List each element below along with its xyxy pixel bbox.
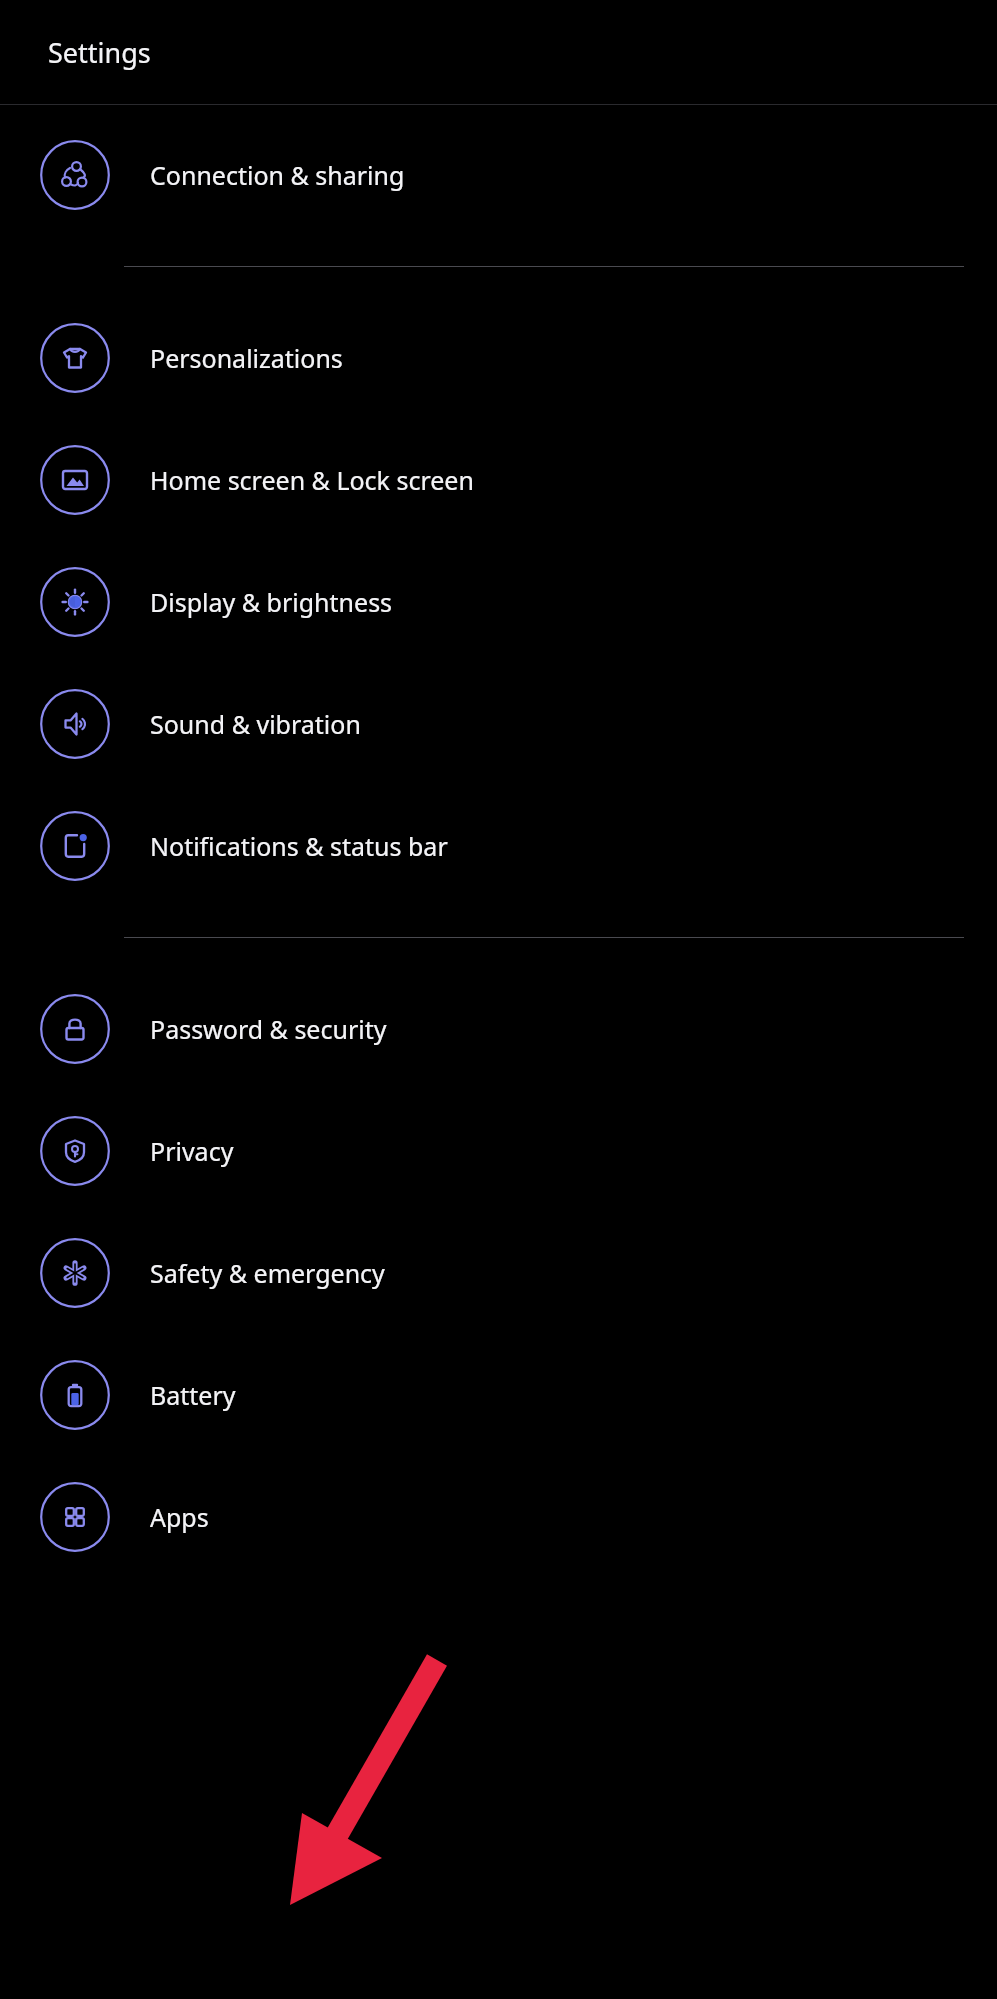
button[interactable]: Password & security bbox=[0, 968, 997, 1090]
staticText: Safety & emergency bbox=[150, 1256, 385, 1290]
staticText: Settings bbox=[48, 34, 151, 71]
other: Pointer to Apps bbox=[0, 0, 997, 1999]
staticText: Apps bbox=[150, 1500, 209, 1534]
button[interactable]: Display & brightness bbox=[0, 541, 997, 663]
button[interactable]: Safety & emergency bbox=[0, 1212, 997, 1334]
staticText: Battery bbox=[150, 1378, 236, 1412]
staticText: Connection & sharing bbox=[150, 158, 405, 192]
staticText: Password & security bbox=[150, 1012, 387, 1046]
staticText: Display & brightness bbox=[150, 585, 393, 619]
staticText: Home screen & Lock screen bbox=[150, 463, 474, 497]
staticText: Notifications & status bar bbox=[150, 829, 448, 863]
button[interactable]: Apps bbox=[0, 1456, 997, 1578]
button[interactable]: Connection & sharing bbox=[0, 114, 997, 236]
staticText: Privacy bbox=[150, 1134, 234, 1168]
button[interactable]: Battery bbox=[0, 1334, 997, 1456]
button[interactable]: Privacy bbox=[0, 1090, 997, 1212]
button[interactable]: Home screen & Lock screen bbox=[0, 419, 997, 541]
button[interactable]: Personalizations bbox=[0, 297, 997, 419]
staticText: Sound & vibration bbox=[150, 707, 361, 741]
staticText: Personalizations bbox=[150, 341, 343, 375]
button[interactable]: Notifications & status bar bbox=[0, 785, 997, 907]
button[interactable]: Sound & vibration bbox=[0, 663, 997, 785]
